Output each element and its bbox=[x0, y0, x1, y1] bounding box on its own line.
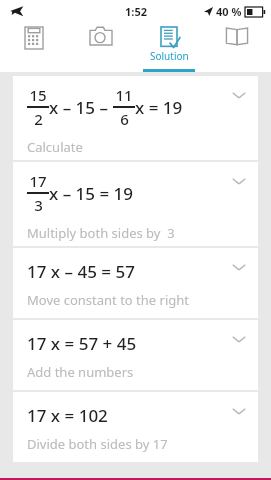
staticText: 1:52 bbox=[125, 4, 147, 19]
button[interactable]: 17 x = 57 + 45 bbox=[13, 320, 258, 390]
staticText: x = 19 bbox=[135, 96, 183, 119]
staticText: 15 bbox=[29, 85, 47, 105]
button[interactable]: 15 bbox=[13, 76, 258, 160]
staticText: x – 15 – bbox=[49, 96, 113, 119]
staticText: 17 bbox=[29, 171, 47, 191]
staticText: 17 x = 57 + 45 bbox=[27, 332, 137, 355]
button[interactable]: 17 x = 102 bbox=[13, 392, 258, 462]
staticText: Add the numbers bbox=[27, 363, 134, 381]
button[interactable]: 17 bbox=[13, 162, 258, 246]
button[interactable]: 17 x – 45 = 57 bbox=[13, 248, 258, 318]
staticText: Solution bbox=[150, 49, 189, 63]
staticText: Move constant to the right bbox=[27, 291, 189, 309]
staticText: 17 x = 102 bbox=[27, 404, 108, 427]
button[interactable]: Calculator bbox=[0, 22, 67, 72]
button[interactable]: Solution bbox=[135, 22, 203, 72]
staticText: 2 bbox=[34, 109, 43, 129]
staticText: Calculate bbox=[27, 138, 83, 156]
button[interactable]: Expand step bbox=[230, 172, 248, 190]
button[interactable]: Expand step bbox=[230, 258, 248, 276]
button[interactable]: Book bbox=[203, 22, 271, 72]
button[interactable]: Expand step bbox=[230, 330, 248, 348]
staticText: x – 15 = 19 bbox=[49, 182, 134, 205]
staticText: 6 bbox=[120, 109, 129, 129]
staticText: 11 bbox=[115, 85, 133, 105]
button[interactable]: Camera bbox=[67, 22, 135, 72]
staticText: 3 bbox=[34, 195, 43, 215]
staticText: 17 x – 45 = 57 bbox=[27, 260, 135, 283]
button[interactable]: Expand step bbox=[230, 86, 248, 104]
staticText: 40 % bbox=[216, 4, 242, 19]
staticText: Multiply both sides by 3 bbox=[27, 224, 175, 242]
button[interactable]: Expand step bbox=[230, 402, 248, 420]
staticText: Divide both sides by 17 bbox=[27, 435, 168, 453]
